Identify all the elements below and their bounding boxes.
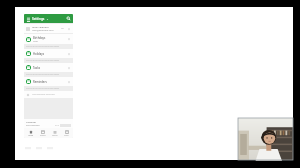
button[interactable]: More options	[67, 52, 71, 56]
button[interactable]: Main calendar	[24, 24, 73, 33]
staticText: Auto	[33, 40, 38, 43]
staticText: Sync is on for this account and device	[26, 87, 60, 90]
button[interactable]: More options	[67, 27, 71, 31]
staticText: Search	[52, 134, 58, 136]
button[interactable]: Events	[37, 129, 48, 137]
staticText: v1.0	[55, 124, 59, 127]
button[interactable]: Home	[25, 129, 36, 137]
button[interactable]: Open navigation menu	[26, 16, 31, 21]
staticText: Home	[28, 134, 34, 136]
staticText: Sync is on for this account and device	[26, 45, 60, 48]
staticText: Reminders	[33, 80, 47, 84]
button[interactable]: Tasks	[24, 63, 73, 72]
staticText: Tasks	[33, 66, 40, 70]
button[interactable]: Reminders	[24, 77, 73, 86]
button[interactable]: Search	[66, 16, 71, 21]
button[interactable]: More options	[67, 66, 71, 70]
staticText: Sync is on for this account and device	[26, 59, 60, 62]
staticText: Main calendar	[32, 25, 49, 28]
button[interactable]: Holidays	[24, 49, 73, 58]
button[interactable]: More options	[67, 37, 71, 41]
staticText: Birthdays	[33, 36, 46, 40]
staticText: Holidays	[33, 52, 45, 56]
staticText: user@example.com	[32, 29, 54, 32]
button[interactable]: More options	[67, 80, 71, 84]
staticText: Sync settings	[26, 124, 40, 127]
button[interactable]: Settings	[32, 17, 49, 21]
button[interactable]: Search	[49, 129, 60, 137]
staticText: Settings	[32, 17, 45, 21]
button[interactable]: More	[61, 129, 72, 137]
staticText: Sync is on for this account and device	[26, 73, 60, 76]
staticText: More	[64, 134, 69, 136]
staticText: Add another account	[32, 93, 55, 96]
button[interactable]: Birthdays	[24, 34, 73, 44]
staticText: ON	[61, 27, 65, 30]
staticText: Events	[40, 134, 46, 136]
staticText: Calendar	[26, 120, 37, 123]
button[interactable]: Add another account	[24, 91, 73, 98]
